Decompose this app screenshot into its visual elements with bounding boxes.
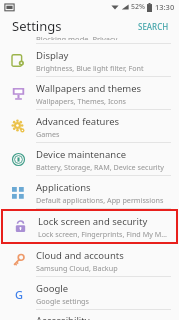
button[interactable]: Advanced features bbox=[0, 110, 179, 143]
staticText: Display bbox=[36, 49, 69, 62]
staticText: 13:30 bbox=[155, 2, 175, 12]
staticText: SEARCH bbox=[138, 21, 169, 32]
staticText: Blocking mode, Privacy bbox=[36, 34, 118, 40]
staticText: Google bbox=[36, 282, 69, 295]
staticText: Samsung Cloud, Backup bbox=[36, 263, 118, 273]
staticText: Advanced features bbox=[36, 115, 120, 128]
staticText: Applications bbox=[36, 181, 91, 194]
staticText: Cloud and accounts bbox=[36, 249, 124, 262]
staticText: Google settings bbox=[36, 296, 89, 306]
staticText: Wallpapers and themes bbox=[36, 82, 142, 95]
button[interactable]: SEARCH bbox=[128, 17, 179, 36]
button[interactable]: G bbox=[0, 277, 179, 310]
staticText: Accessibility bbox=[36, 314, 90, 320]
button[interactable]: Display bbox=[0, 44, 179, 77]
staticText: G bbox=[15, 287, 23, 300]
staticText: Brightness, Blue light filter, Font bbox=[36, 63, 144, 73]
staticText: Wallpapers, Themes, Icons bbox=[36, 96, 127, 106]
staticText: Lock screen and security bbox=[38, 215, 148, 228]
staticText: Lock screen, Fingerprints, Find My Mobil… bbox=[38, 229, 171, 239]
button[interactable]: Applications bbox=[0, 176, 179, 209]
staticText: Games bbox=[36, 129, 60, 139]
staticText: Battery, Storage, RAM, Device security bbox=[36, 162, 164, 172]
button[interactable]: Device maintenance bbox=[0, 143, 179, 176]
staticText: Default applications, App permissions bbox=[36, 195, 164, 205]
button[interactable]: Blocking mode, Privacy bbox=[0, 38, 179, 44]
button[interactable]: Accessibility bbox=[0, 310, 179, 320]
button[interactable]: Wallpapers and themes bbox=[0, 77, 179, 110]
staticText: 52% bbox=[131, 2, 145, 12]
staticText: Device maintenance bbox=[36, 148, 127, 161]
button[interactable]: Lock screen and security bbox=[2, 210, 177, 243]
button[interactable]: Cloud and accounts bbox=[0, 244, 179, 277]
staticText: Settings bbox=[12, 17, 62, 35]
